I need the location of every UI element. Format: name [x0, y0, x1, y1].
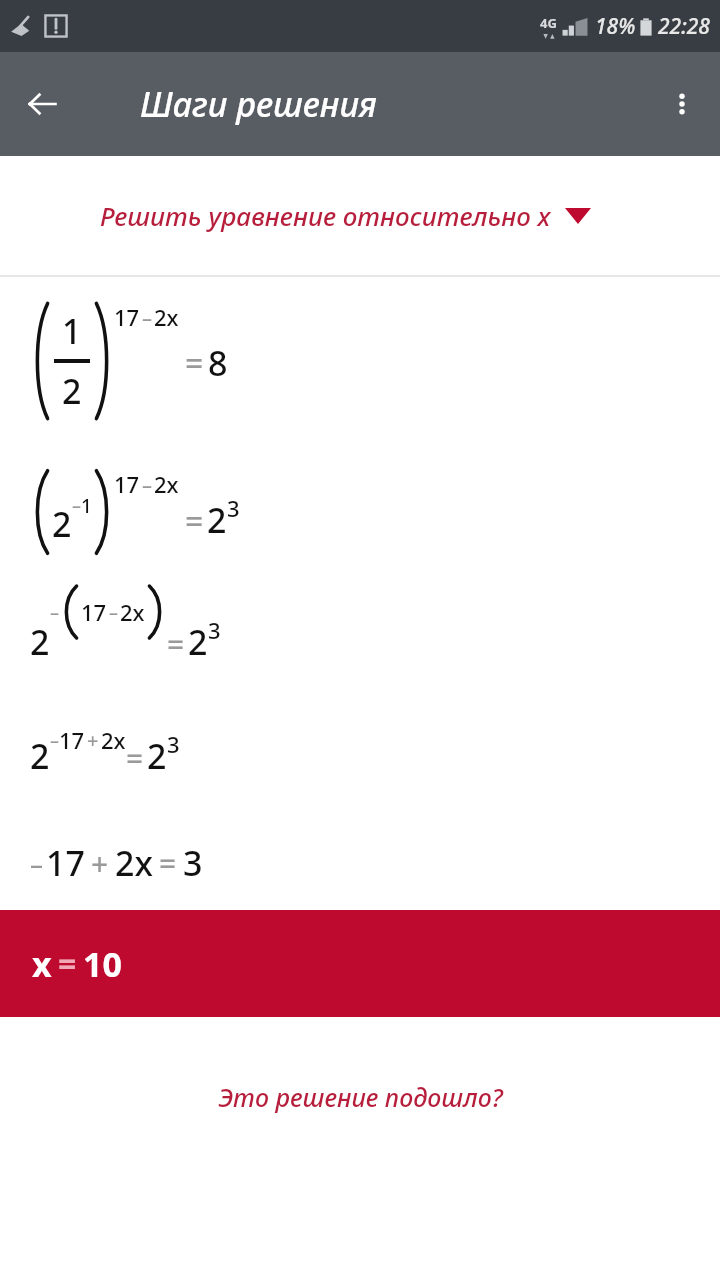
staticText: 2: [207, 497, 227, 543]
staticText: 17: [46, 840, 85, 886]
staticText: =: [185, 341, 204, 385]
staticText: 2: [147, 733, 167, 779]
staticText: 2x: [154, 302, 179, 332]
staticText: –: [109, 600, 118, 625]
staticText: –: [72, 493, 81, 518]
staticText: –: [142, 471, 152, 498]
staticText: 17: [59, 725, 85, 755]
staticText: 10: [83, 941, 122, 987]
staticText: 8: [208, 340, 228, 386]
staticText: =: [58, 942, 77, 986]
staticText: 2: [30, 619, 50, 665]
staticText: 2x: [115, 840, 153, 886]
staticText: 3: [167, 729, 180, 759]
staticText: 17: [81, 597, 107, 627]
staticText: 2: [52, 501, 72, 547]
staticText: =: [167, 624, 185, 665]
staticText: –: [50, 728, 59, 753]
staticText: 2: [188, 619, 208, 665]
button[interactable]: x: [0, 910, 720, 1017]
staticText: 2x: [101, 725, 126, 755]
staticText: 2: [62, 368, 82, 414]
staticText: 2: [30, 733, 50, 779]
staticText: 17: [114, 469, 140, 499]
staticText: +: [87, 727, 99, 754]
button[interactable]: Это решение подошло?: [218, 1080, 503, 1114]
staticText: 4G: [540, 14, 557, 32]
staticText: 3: [183, 840, 203, 886]
button[interactable]: Back: [14, 76, 70, 132]
staticText: Решить уравнение относительно x: [100, 198, 551, 233]
staticText: 1: [62, 308, 82, 354]
staticText: 2x: [120, 597, 145, 627]
staticText: Шаги решения: [140, 81, 377, 127]
staticText: 3: [227, 493, 240, 523]
staticText: =: [126, 738, 144, 779]
staticText: 18%: [595, 12, 636, 41]
staticText: –: [30, 846, 44, 881]
staticText: –: [50, 600, 59, 625]
staticText: =: [185, 499, 204, 543]
staticText: 22:28: [658, 12, 710, 41]
button[interactable]: More options: [654, 76, 710, 132]
staticText: –: [142, 304, 152, 331]
staticText: x: [32, 941, 52, 987]
staticText: +: [91, 843, 109, 884]
staticText: 17: [114, 302, 140, 332]
staticText: 1: [81, 493, 92, 519]
staticText: =: [159, 843, 177, 884]
staticText: 3: [208, 615, 221, 645]
staticText: 2x: [154, 469, 179, 499]
button[interactable]: Решить уравнение относительно x: [0, 156, 720, 275]
